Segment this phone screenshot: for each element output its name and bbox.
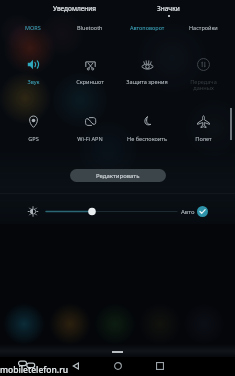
- button[interactable]: MORS: [5, 21, 61, 33]
- staticText: GPS: [28, 135, 39, 143]
- staticText: Защита зрения: [126, 78, 168, 86]
- staticText: Автоповорот: [130, 24, 165, 31]
- staticText: Настройки: [189, 24, 218, 31]
- button[interactable]: Настройки: [175, 21, 231, 33]
- staticText: Редактировать: [96, 172, 140, 180]
- staticText: Скриншот: [76, 78, 104, 86]
- button[interactable]: Защита зрения: [119, 58, 175, 92]
- staticText: mobiletelefon.ru: [0, 364, 69, 376]
- staticText: Полет: [195, 135, 212, 143]
- button[interactable]: GPS: [5, 115, 61, 149]
- button[interactable]: Полет: [175, 115, 231, 149]
- staticText: Передача данных: [190, 78, 217, 92]
- staticText: Bluetooth: [77, 24, 103, 31]
- button[interactable]: Скриншот: [62, 58, 118, 92]
- button[interactable]: Уведомления: [45, 0, 105, 19]
- button[interactable]: Recents: [153, 359, 166, 372]
- button[interactable]: Звук: [5, 58, 61, 92]
- staticText: Уведомления: [53, 4, 97, 13]
- staticText: Авто: [181, 208, 195, 216]
- staticText: Звук: [27, 78, 40, 86]
- button[interactable]: Home: [111, 359, 124, 372]
- button[interactable]: Автоповорот: [119, 21, 175, 33]
- staticText: Значки: [157, 4, 180, 13]
- staticText: Не беспокоить: [127, 135, 167, 143]
- button[interactable]: Не беспокоить: [119, 115, 175, 149]
- button[interactable]: Редактировать: [70, 169, 166, 182]
- staticText: Wi-Fi APN: [77, 135, 103, 143]
- button[interactable]: Split screen: [18, 360, 35, 369]
- button[interactable]: Значки: [138, 0, 198, 19]
- button[interactable]: Wi-Fi APN: [62, 115, 118, 149]
- button[interactable]: Bluetooth: [62, 21, 118, 33]
- button[interactable]: Back: [69, 359, 82, 372]
- button[interactable]: Передача данных: [175, 58, 231, 92]
- staticText: MORS: [25, 24, 41, 31]
